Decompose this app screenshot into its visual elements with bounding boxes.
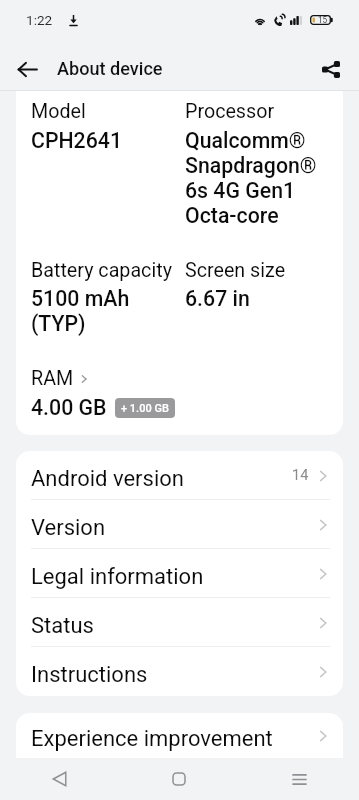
button[interactable]: Android version (16, 451, 343, 500)
staticText: Legal information (31, 564, 204, 590)
staticText: Android version (31, 466, 184, 492)
button[interactable]: Status (16, 598, 343, 647)
staticText: 15 (318, 15, 328, 25)
button[interactable]: Version (16, 500, 343, 549)
staticText: 6.67 in (185, 286, 250, 311)
staticText: Model (31, 100, 86, 123)
button[interactable]: Instructions (16, 647, 343, 696)
staticText: Qualcomm® Snapdragon® 6s 4G Gen1 Octa-co… (185, 128, 317, 228)
staticText: 14 (292, 467, 309, 484)
staticText: About device (57, 58, 163, 79)
button[interactable]: Share (311, 49, 351, 89)
staticText: Experience improvement (31, 726, 273, 752)
button[interactable]: Recent apps (239, 758, 359, 800)
staticText: Version (31, 515, 106, 541)
staticText: 1:22 (26, 12, 53, 28)
staticText: Screen size (185, 259, 286, 282)
staticText: 5100 mAh (TYP) (31, 286, 130, 336)
button[interactable]: Back (7, 49, 47, 89)
button[interactable]: Experience improvement (16, 713, 343, 758)
staticText: Battery capacity (31, 259, 172, 282)
button[interactable]: Back (0, 758, 119, 800)
button[interactable]: Legal information (16, 549, 343, 598)
staticText: Status (31, 613, 94, 639)
staticText: 4.00 GB (31, 395, 107, 420)
staticText: Instructions (31, 662, 148, 688)
staticText: CPH2641 (31, 128, 123, 153)
staticText: RAM (31, 367, 74, 390)
button[interactable]: Home (119, 758, 239, 800)
staticText: Processor (185, 100, 275, 123)
button[interactable]: RAM (31, 367, 89, 390)
staticText: + 1.00 GB (121, 402, 169, 415)
